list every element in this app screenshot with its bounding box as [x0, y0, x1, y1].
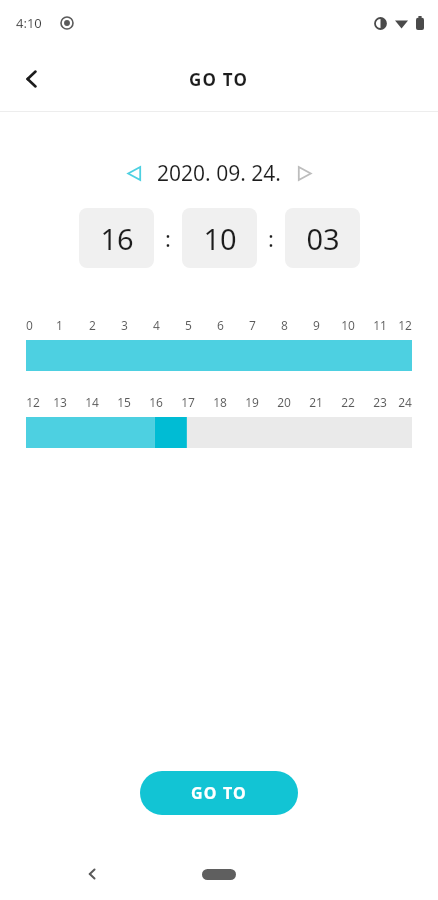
staticText: 2	[89, 317, 96, 333]
staticText: 12	[398, 317, 412, 333]
staticText: 16	[149, 394, 163, 410]
staticText: 10	[341, 317, 355, 333]
staticText: 16	[100, 219, 134, 258]
button[interactable]: GO TO	[140, 771, 298, 815]
staticText: 6	[217, 317, 224, 333]
button[interactable]: Next day	[287, 156, 321, 190]
staticText: 1	[56, 317, 63, 333]
staticText: 8	[281, 317, 288, 333]
staticText: 2020. 09. 24.	[157, 159, 281, 188]
staticText: 13	[53, 394, 67, 410]
staticText: 20	[277, 394, 291, 410]
button[interactable]: 03	[285, 208, 360, 268]
staticText: 21	[309, 394, 323, 410]
button[interactable]	[26, 417, 412, 448]
staticText: 22	[341, 394, 355, 410]
staticText: 18	[213, 394, 227, 410]
button[interactable]: 10	[182, 208, 257, 268]
staticText: 0	[26, 317, 33, 333]
staticText: 4	[153, 317, 160, 333]
staticText: :	[165, 223, 171, 253]
staticText: 5	[185, 317, 192, 333]
button[interactable]: Home	[202, 869, 236, 880]
staticText: 3	[121, 317, 128, 333]
staticText: 10	[203, 219, 237, 258]
button[interactable]: Back	[72, 854, 112, 894]
staticText: 24	[398, 394, 412, 410]
button[interactable]: 16	[79, 208, 154, 268]
staticText: 9	[313, 317, 320, 333]
staticText: 14	[85, 394, 99, 410]
staticText: 23	[373, 394, 387, 410]
staticText: GO TO	[189, 68, 249, 91]
staticText: 12	[26, 394, 40, 410]
staticText: 03	[306, 219, 340, 258]
staticText: 19	[245, 394, 259, 410]
staticText: 11	[373, 317, 387, 333]
staticText: :	[268, 223, 274, 253]
staticText: 15	[117, 394, 131, 410]
staticText: 4:10	[16, 14, 42, 32]
staticText: GO TO	[191, 782, 247, 804]
button[interactable]: Previous day	[117, 156, 151, 190]
staticText: 17	[181, 394, 195, 410]
button[interactable]: Back	[8, 55, 56, 103]
staticText: 7	[249, 317, 256, 333]
